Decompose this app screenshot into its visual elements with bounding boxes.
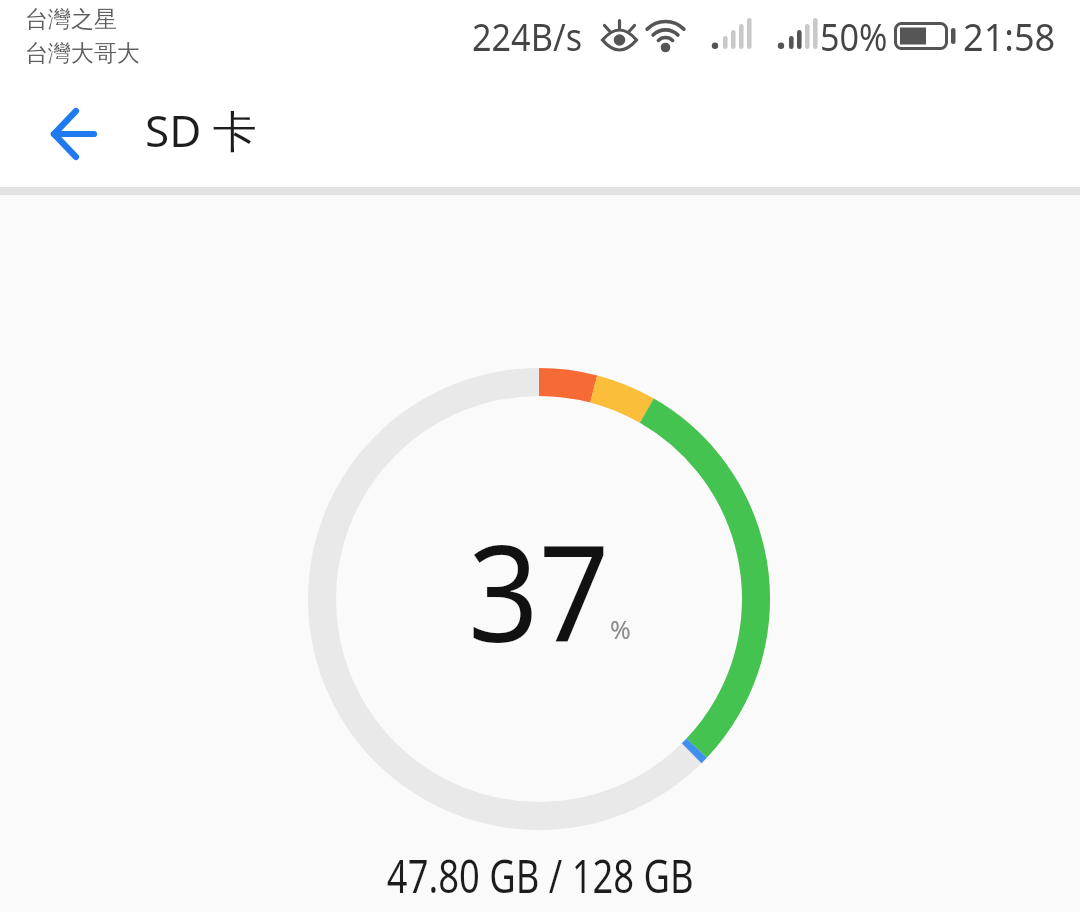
staticText: 47.80 GB / 128 GB — [387, 844, 694, 907]
staticText: 50% — [820, 10, 888, 62]
button[interactable] — [36, 96, 114, 172]
staticText: % — [610, 612, 631, 646]
staticText: 台灣大哥大 — [25, 39, 140, 68]
staticText: SD 卡 — [145, 100, 257, 160]
staticText: 21:58 — [963, 10, 1056, 62]
staticText: 台灣之星 — [25, 5, 117, 34]
staticText: 224B/s — [472, 10, 583, 62]
staticText: 37 — [468, 500, 610, 681]
